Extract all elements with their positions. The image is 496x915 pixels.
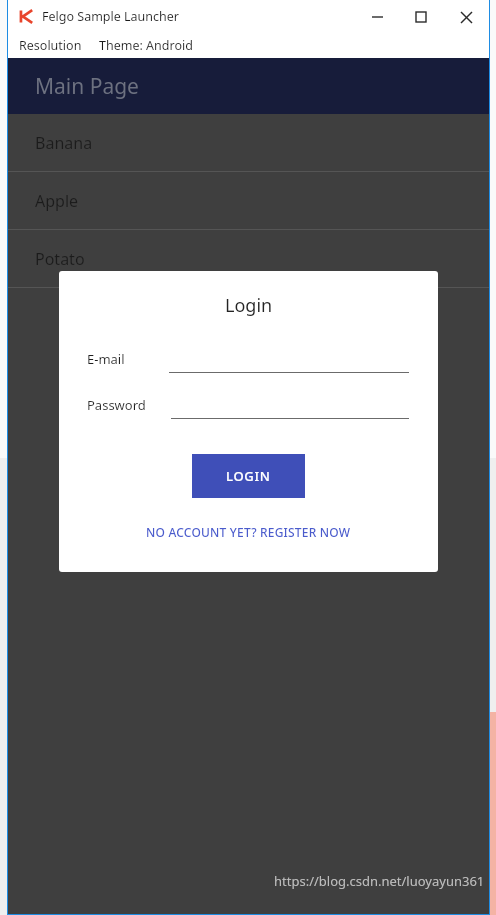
- staticText: E-mail: [87, 350, 125, 368]
- staticText: Potato: [35, 248, 85, 270]
- button[interactable]: Maximize: [399, 1, 443, 33]
- button[interactable]: LOGIN: [192, 454, 305, 498]
- button[interactable]: Theme: Android: [93, 34, 199, 57]
- staticText: LOGIN: [226, 467, 271, 485]
- button[interactable]: [171, 391, 409, 419]
- staticText: Password: [87, 396, 146, 414]
- staticText: Felgo Sample Launcher: [42, 8, 179, 25]
- button[interactable]: Resolution: [13, 34, 88, 57]
- button[interactable]: Minimize: [355, 1, 399, 33]
- button[interactable]: Apple: [8, 172, 489, 230]
- staticText: Login: [225, 293, 273, 318]
- staticText: Apple: [35, 190, 79, 212]
- staticText: Main Page: [35, 72, 139, 101]
- staticText: NO ACCOUNT YET? REGISTER NOW: [146, 524, 351, 540]
- button[interactable]: NO ACCOUNT YET? REGISTER NOW: [138, 520, 359, 544]
- button[interactable]: Banana: [8, 114, 489, 172]
- staticText: Theme: Android: [99, 37, 193, 54]
- staticText: Banana: [35, 132, 93, 154]
- button[interactable]: [169, 345, 409, 373]
- button[interactable]: Potato: [8, 230, 489, 288]
- staticText: Resolution: [19, 37, 82, 54]
- button[interactable]: Close: [443, 1, 489, 33]
- staticText: https://blog.csdn.net/luoyayun361: [274, 872, 485, 890]
